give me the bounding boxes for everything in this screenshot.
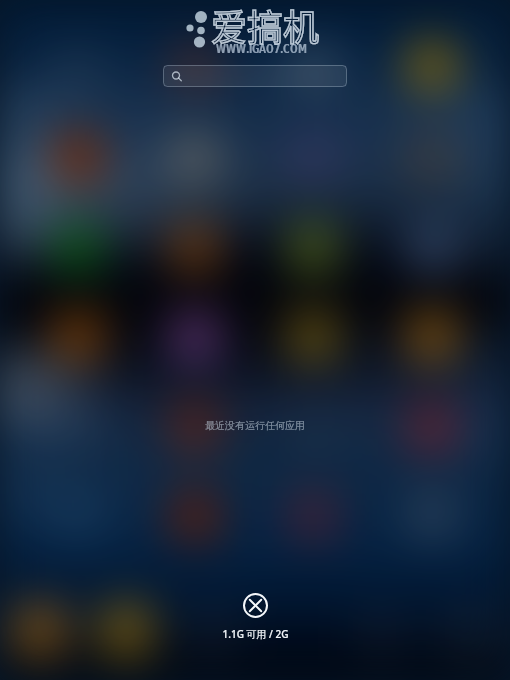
button[interactable] [163,65,347,87]
staticText: 最近没有运行任何应用 [205,419,305,432]
button[interactable]: Close all apps [240,590,271,621]
staticText: 1.1G 可用 / 2G [222,627,289,641]
